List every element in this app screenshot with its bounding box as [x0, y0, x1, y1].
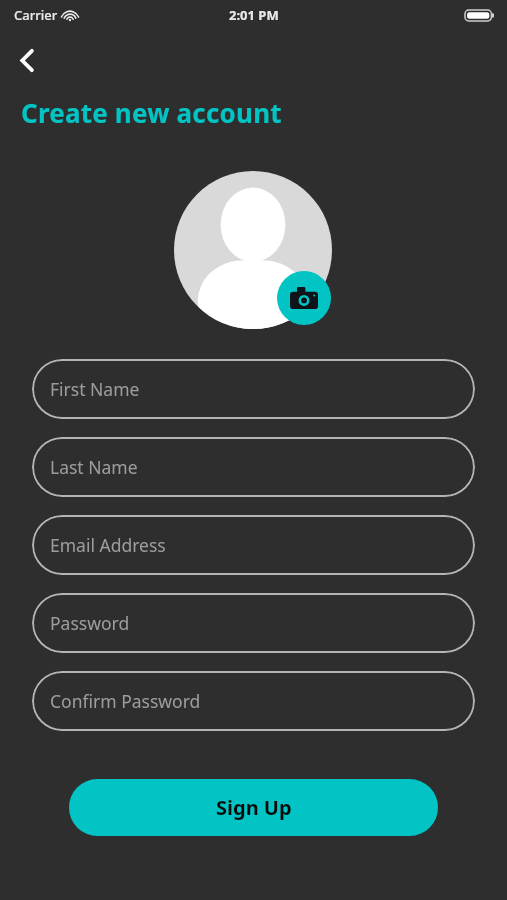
staticText: Email Address — [50, 533, 166, 557]
button[interactable]: Email Address — [32, 515, 475, 575]
button[interactable]: Back — [7, 40, 47, 80]
staticText: Carrier — [14, 6, 58, 24]
button[interactable]: First Name — [32, 359, 475, 419]
staticText: Create new account — [21, 95, 282, 130]
button[interactable]: Last Name — [32, 437, 475, 497]
button[interactable]: Confirm Password — [32, 671, 475, 731]
staticText: Sign Up — [216, 794, 292, 821]
staticText: 2:01 PM — [229, 6, 279, 24]
button[interactable]: Password — [32, 593, 475, 653]
staticText: Last Name — [50, 455, 138, 479]
staticText: First Name — [50, 377, 140, 401]
staticText: Confirm Password — [50, 689, 201, 713]
button[interactable]: Profile photo — [174, 171, 332, 329]
button[interactable]: Change photo — [277, 271, 331, 325]
staticText: Password — [50, 611, 130, 635]
button[interactable]: Sign Up — [69, 779, 438, 836]
